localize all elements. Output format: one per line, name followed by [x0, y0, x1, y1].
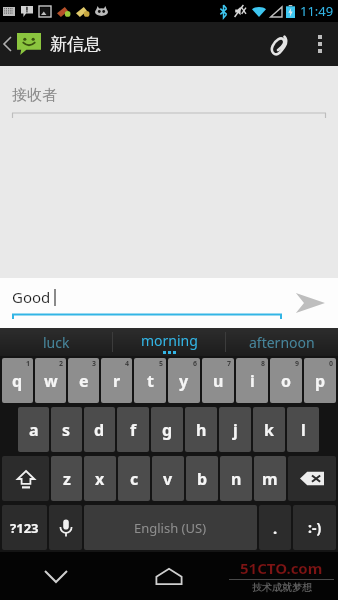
button[interactable]: c: [118, 456, 150, 501]
staticText: 7: [227, 359, 232, 369]
staticText: h: [196, 419, 207, 441]
staticText: 新信息: [50, 34, 101, 55]
staticText: 6: [193, 359, 198, 369]
button[interactable]: 新信息: [0, 22, 107, 66]
staticText: z: [63, 468, 71, 490]
staticText: 接收者: [12, 86, 57, 105]
staticText: 11:49: [300, 2, 334, 20]
staticText: c: [130, 468, 139, 490]
button[interactable]: Hide keyboard: [0, 552, 112, 600]
staticText: a: [29, 419, 39, 441]
staticText: Good: [12, 287, 51, 307]
button[interactable]: j: [219, 407, 251, 452]
button[interactable]: morning: [113, 328, 225, 356]
staticText: l: [301, 419, 306, 441]
button[interactable]: g: [151, 407, 183, 452]
staticText: w: [44, 370, 58, 392]
staticText: 技术成就梦想: [252, 581, 312, 594]
staticText: q: [12, 370, 23, 392]
button[interactable]: Voice input: [49, 505, 82, 550]
staticText: 9: [295, 359, 300, 369]
button[interactable]: p: [304, 358, 336, 403]
button[interactable]: i: [236, 358, 268, 403]
staticText: .: [273, 518, 278, 538]
staticText: 8: [261, 359, 266, 369]
button[interactable]: o: [270, 358, 302, 403]
staticText: 0: [329, 359, 334, 369]
staticText: x: [95, 468, 105, 490]
button[interactable]: More options: [302, 22, 338, 66]
button[interactable]: Home: [112, 552, 225, 600]
button[interactable]: t: [134, 358, 166, 403]
staticText: ?123: [10, 519, 39, 537]
button[interactable]: q: [2, 358, 33, 403]
staticText: morning: [141, 331, 198, 350]
staticText: :-): [308, 518, 322, 537]
staticText: 3: [92, 359, 97, 369]
button[interactable]: s: [51, 407, 82, 452]
staticText: English (US): [134, 519, 207, 537]
staticText: 1: [26, 359, 31, 369]
button[interactable]: Shift: [2, 456, 49, 501]
button[interactable]: d: [84, 407, 115, 452]
staticText: p: [315, 370, 326, 392]
staticText: d: [94, 419, 105, 441]
staticText: n: [231, 468, 242, 490]
button[interactable]: m: [254, 456, 286, 501]
button[interactable]: Backspace: [288, 456, 336, 501]
button[interactable]: .: [259, 505, 291, 550]
staticText: 5: [159, 359, 164, 369]
staticText: r: [113, 370, 121, 392]
button[interactable]: luck: [0, 328, 112, 356]
button[interactable]: Attach: [256, 22, 302, 66]
staticText: y: [179, 370, 189, 392]
staticText: g: [162, 419, 173, 441]
button[interactable]: afternoon: [226, 328, 338, 356]
button[interactable]: a: [18, 407, 49, 452]
button[interactable]: k: [253, 407, 285, 452]
staticText: k: [264, 419, 274, 441]
button[interactable]: v: [152, 456, 184, 501]
staticText: b: [197, 468, 208, 490]
button[interactable]: h: [185, 407, 217, 452]
staticText: 2: [59, 359, 64, 369]
button[interactable]: z: [51, 456, 82, 501]
button[interactable]: x: [84, 456, 116, 501]
button[interactable]: u: [202, 358, 234, 403]
staticText: u: [213, 370, 224, 392]
button[interactable]: y: [168, 358, 200, 403]
staticText: f: [130, 419, 137, 441]
staticText: 4: [125, 359, 130, 369]
button[interactable]: ?123: [2, 505, 47, 550]
button[interactable]: e: [68, 358, 99, 403]
staticText: e: [79, 370, 89, 392]
button[interactable]: Send: [282, 278, 338, 328]
button[interactable]: r: [101, 358, 132, 403]
staticText: afternoon: [249, 333, 315, 352]
staticText: t: [147, 370, 154, 392]
button[interactable]: f: [117, 407, 149, 452]
staticText: v: [163, 468, 173, 490]
button[interactable]: n: [220, 456, 252, 501]
button[interactable]: English (US): [84, 505, 257, 550]
button[interactable]: w: [35, 358, 66, 403]
button[interactable]: b: [186, 456, 218, 501]
staticText: i: [250, 370, 255, 392]
staticText: o: [281, 370, 292, 392]
staticText: 51CTO.com: [240, 558, 323, 578]
staticText: luck: [43, 333, 70, 352]
staticText: m: [262, 468, 278, 490]
staticText: s: [62, 419, 71, 441]
staticText: j: [233, 419, 238, 441]
button[interactable]: :-): [293, 505, 336, 550]
button[interactable]: l: [287, 407, 319, 452]
